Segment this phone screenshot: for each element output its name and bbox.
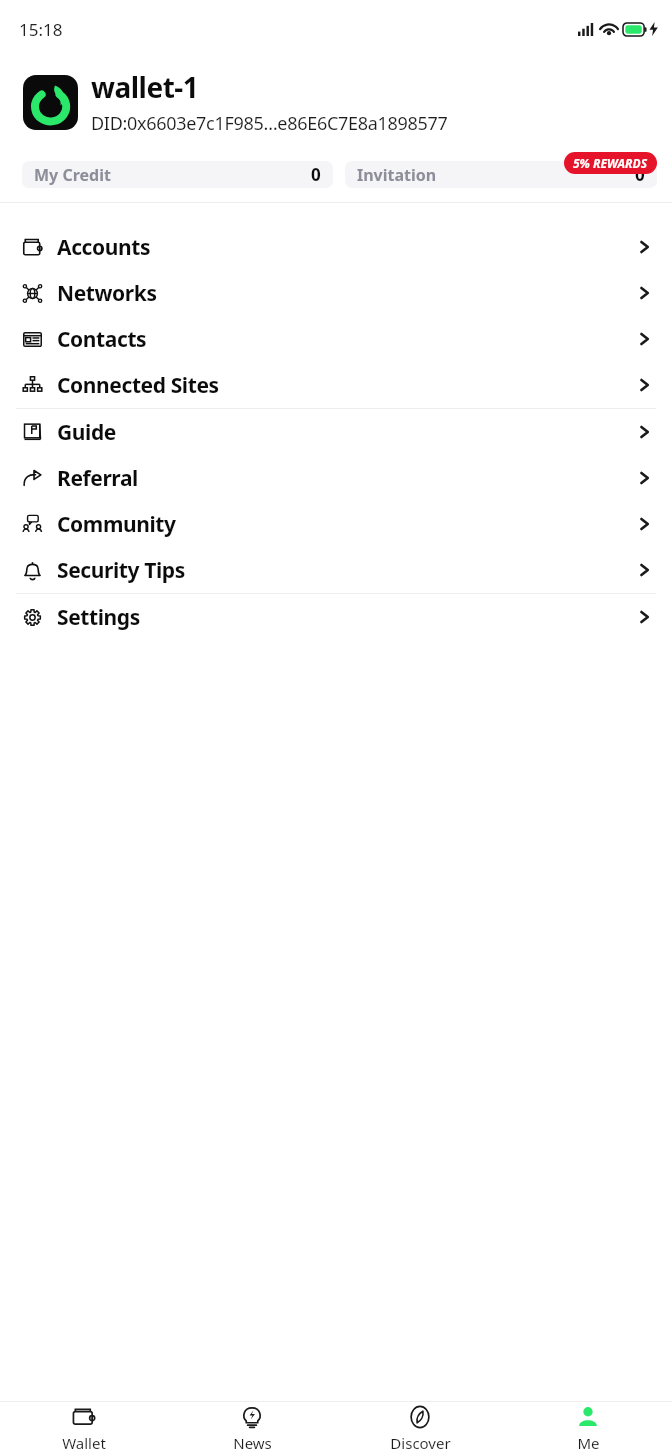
staticText: Community [57,510,176,539]
button[interactable]: Guide [0,409,672,455]
staticText: Me [577,1433,600,1453]
button[interactable]: Discover [336,1402,504,1456]
button[interactable]: Settings [0,594,672,640]
staticText: My Credit [34,164,111,186]
staticText: wallet-1 [91,68,199,106]
button[interactable]: Security Tips [0,547,672,593]
other: Discover [408,1405,432,1429]
other: News [240,1405,264,1429]
button[interactable]: Wallet [0,1402,168,1456]
button[interactable]: Referral [0,455,672,501]
staticText: 0 [311,163,321,186]
staticText: Security Tips [57,556,185,585]
staticText: 15:18 [19,18,63,41]
staticText: Accounts [57,233,151,262]
staticText: 5% REWARDS [573,155,648,171]
button[interactable]: Networks [0,270,672,316]
staticText: Settings [57,603,140,632]
staticText: Guide [57,418,116,447]
button[interactable]: Wallet avatar [23,75,78,130]
button[interactable]: 5% REWARDS [564,152,657,174]
staticText: Discover [390,1433,451,1453]
staticText: Referral [57,464,138,493]
staticText: Invitation [357,164,437,186]
button[interactable]: Accounts [0,224,672,270]
button[interactable]: My Credit [22,161,333,188]
button[interactable]: Community [0,501,672,547]
other: Me [576,1405,600,1429]
button[interactable]: Connected Sites [0,362,672,408]
button[interactable]: Contacts [0,316,672,362]
staticText: Contacts [57,325,147,354]
staticText: News [233,1433,272,1453]
other: Wallet [72,1405,96,1429]
staticText: Networks [57,279,157,308]
button[interactable]: News [168,1402,336,1456]
button[interactable]: Me [504,1402,672,1456]
staticText: Wallet [62,1433,106,1453]
staticText: Connected Sites [57,371,219,400]
staticText: 0 [635,163,645,186]
button[interactable]: Invitation [345,161,657,188]
staticText: DID:0x6603e7c1F985…e86E6C7E8a1898577 [91,111,448,136]
